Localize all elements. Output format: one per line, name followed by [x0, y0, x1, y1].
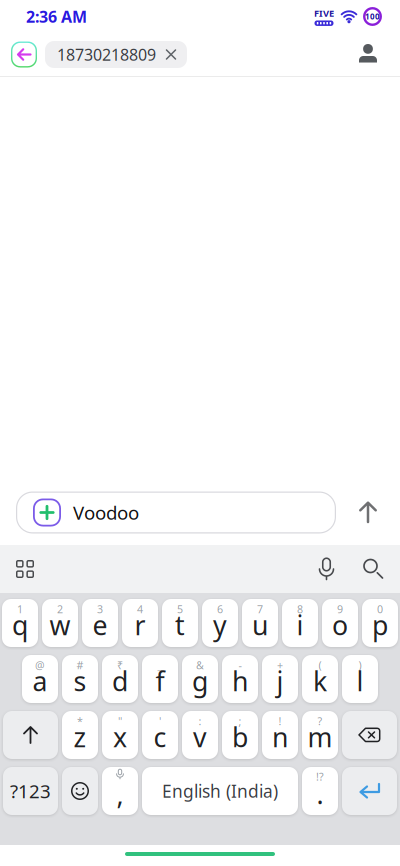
staticText: @ — [35, 658, 45, 672]
button[interactable]: Clear — [156, 49, 187, 59]
button[interactable]: Attach — [33, 498, 61, 526]
staticText: h — [232, 663, 248, 699]
button[interactable]: 18730218809 — [45, 41, 187, 68]
staticText: _ — [157, 658, 162, 672]
staticText: ' — [159, 714, 161, 728]
staticText: " — [118, 714, 122, 728]
button[interactable]: Emoji — [62, 767, 98, 815]
staticText: q — [12, 607, 28, 643]
staticText: . — [316, 776, 323, 812]
button[interactable]: # — [62, 655, 98, 703]
staticText: 2:36 AM — [26, 6, 87, 27]
staticText: ₹ — [117, 658, 123, 672]
staticText: o — [332, 607, 348, 643]
button[interactable]: Space — [142, 767, 298, 815]
button[interactable]: Send — [336, 491, 400, 533]
staticText: - — [238, 658, 241, 672]
staticText: i — [296, 607, 303, 643]
staticText: ? — [317, 714, 322, 728]
staticText: v — [193, 719, 207, 755]
button[interactable]: ( — [302, 655, 338, 703]
button[interactable]: ' — [142, 711, 178, 759]
staticText: ; — [238, 714, 241, 728]
button[interactable]: 7 — [242, 599, 278, 647]
button[interactable]: Back — [11, 41, 37, 67]
staticText: 4 — [137, 602, 143, 616]
button[interactable]: : — [182, 711, 218, 759]
staticText: r — [134, 607, 145, 643]
button[interactable]: !? — [302, 767, 338, 815]
staticText: y — [213, 607, 227, 643]
button[interactable]: ; — [222, 711, 258, 759]
button[interactable]: _ — [142, 655, 178, 703]
button[interactable]: Voice typing — [317, 558, 336, 580]
staticText: ) — [358, 658, 361, 672]
button[interactable]: & — [182, 655, 218, 703]
button[interactable]: 2 — [42, 599, 78, 647]
staticText: 5 — [177, 602, 183, 616]
staticText: 0 — [377, 602, 383, 616]
staticText: , — [116, 776, 123, 812]
staticText: + — [277, 658, 283, 672]
button[interactable]: 9 — [322, 599, 358, 647]
button[interactable]: - — [222, 655, 258, 703]
staticText: l — [356, 663, 363, 699]
staticText: 100 — [365, 11, 380, 22]
button[interactable]: ? — [302, 711, 338, 759]
button[interactable]: Delete — [342, 711, 397, 759]
button[interactable]: ! — [262, 711, 298, 759]
button[interactable]: Shift — [3, 711, 58, 759]
staticText: 18730218809 — [57, 44, 156, 65]
staticText: s — [73, 663, 86, 699]
staticText: z — [73, 719, 86, 755]
staticText: !? — [316, 769, 324, 784]
button[interactable]: ) — [342, 655, 378, 703]
button[interactable]: Contact — [355, 41, 381, 67]
staticText: 7 — [257, 602, 263, 616]
button[interactable]: 4 — [122, 599, 158, 647]
staticText: 9 — [337, 602, 343, 616]
button[interactable]: * — [62, 711, 98, 759]
button[interactable]: Keyboard apps — [0, 560, 34, 578]
staticText: j — [276, 663, 283, 699]
staticText: 1 — [17, 602, 23, 616]
staticText: c — [153, 719, 166, 755]
staticText: m — [307, 719, 332, 755]
button[interactable]: " — [102, 711, 138, 759]
staticText: e — [92, 607, 107, 643]
button[interactable]: Enter — [342, 767, 397, 815]
button[interactable]: 8 — [282, 599, 318, 647]
staticText: d — [112, 663, 128, 699]
staticText: # — [76, 658, 83, 672]
staticText: English (India) — [162, 779, 278, 802]
staticText: u — [252, 607, 268, 643]
staticText: 8 — [297, 602, 303, 616]
staticText: p — [372, 607, 388, 643]
staticText: b — [232, 719, 248, 755]
staticText: w — [49, 607, 70, 643]
staticText: ?123 — [10, 779, 51, 803]
button[interactable]: , — [102, 767, 138, 815]
staticText: k — [313, 663, 327, 699]
staticText: g — [192, 663, 208, 699]
staticText: 3 — [97, 602, 103, 616]
staticText: 2 — [57, 602, 63, 616]
button[interactable]: Voodoo — [16, 491, 336, 533]
staticText: & — [196, 658, 204, 672]
button[interactable]: 6 — [202, 599, 238, 647]
button[interactable]: 1 — [2, 599, 38, 647]
staticText: * — [77, 714, 83, 728]
staticText: Voodoo — [73, 500, 139, 525]
button[interactable]: Symbols — [3, 767, 58, 815]
button[interactable]: @ — [22, 655, 58, 703]
staticText: x — [113, 719, 127, 755]
staticText: ( — [318, 658, 321, 672]
button[interactable]: Search — [336, 559, 400, 578]
button[interactable]: 5 — [162, 599, 198, 647]
staticText: 6 — [217, 602, 223, 616]
button[interactable]: 3 — [82, 599, 118, 647]
staticText: a — [32, 663, 47, 699]
button[interactable]: ₹ — [102, 655, 138, 703]
button[interactable]: + — [262, 655, 298, 703]
button[interactable]: 0 — [362, 599, 398, 647]
